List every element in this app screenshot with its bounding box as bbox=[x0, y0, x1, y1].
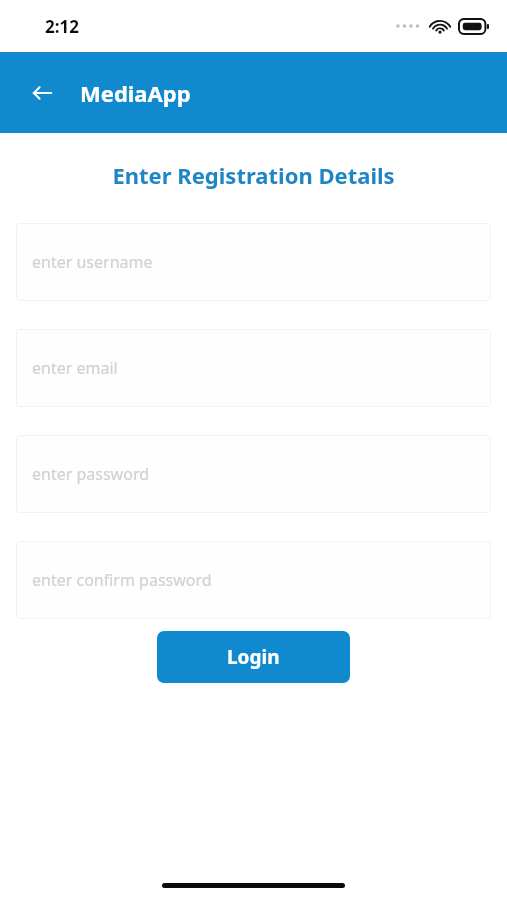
staticText: MediaApp bbox=[80, 78, 191, 108]
button[interactable]: Back bbox=[22, 73, 62, 113]
staticText: enter email bbox=[32, 357, 118, 379]
staticText: Enter Registration Details bbox=[0, 160, 507, 190]
button[interactable]: enter username bbox=[16, 223, 491, 301]
staticText: enter password bbox=[32, 463, 150, 485]
button[interactable]: enter password bbox=[16, 435, 491, 513]
staticText: enter username bbox=[32, 251, 153, 273]
button[interactable]: enter email bbox=[16, 329, 491, 407]
staticText: Login bbox=[227, 644, 280, 670]
button[interactable]: Login bbox=[157, 631, 350, 683]
staticText: 2:12 bbox=[45, 15, 79, 38]
staticText: enter confirm password bbox=[32, 569, 212, 591]
button[interactable]: enter confirm password bbox=[16, 541, 491, 619]
